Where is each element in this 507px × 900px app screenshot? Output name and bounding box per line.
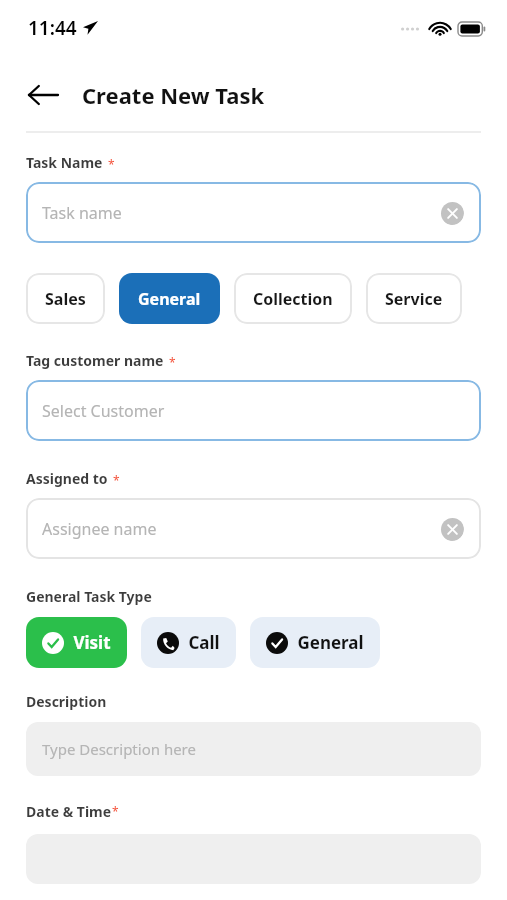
button[interactable]: Task name xyxy=(26,182,481,243)
staticText: 11:44 xyxy=(28,15,77,41)
staticText: Assigned to xyxy=(26,469,108,488)
button[interactable]: Sales xyxy=(26,273,105,324)
staticText: Sales xyxy=(45,288,86,310)
staticText: Date & Time xyxy=(26,802,112,821)
staticText: Create New Task xyxy=(82,80,265,110)
staticText: * xyxy=(113,472,120,488)
staticText: General Task Type xyxy=(26,587,152,606)
staticText: Select Customer xyxy=(42,400,165,422)
staticText: General xyxy=(138,288,201,310)
staticText: Assignee name xyxy=(42,518,157,540)
button[interactable]: General xyxy=(250,617,380,668)
staticText: Visit xyxy=(73,631,111,654)
staticText: * xyxy=(169,354,176,370)
staticText: Description xyxy=(26,692,107,711)
button[interactable]: Back xyxy=(26,78,60,112)
staticText: Task Name xyxy=(26,153,103,172)
button[interactable]: Assignee name xyxy=(26,498,481,559)
button[interactable]: Clear xyxy=(440,201,464,225)
staticText: General xyxy=(297,631,364,654)
staticText: Type Description here xyxy=(42,739,196,759)
staticText: Tag customer name xyxy=(26,351,164,370)
button[interactable]: Clear xyxy=(440,517,464,541)
staticText: * xyxy=(108,156,115,172)
staticText: Service xyxy=(385,288,443,310)
button[interactable]: Service xyxy=(366,273,462,324)
staticText: Collection xyxy=(253,288,333,310)
button[interactable]: General xyxy=(119,273,220,324)
button[interactable]: Visit xyxy=(26,617,127,668)
button[interactable]: Collection xyxy=(234,273,352,324)
button[interactable]: Call xyxy=(141,617,236,668)
button[interactable]: Select Customer xyxy=(26,380,481,441)
staticText: * xyxy=(112,803,119,819)
button[interactable]: Type Description here xyxy=(26,722,481,776)
staticText: Task name xyxy=(42,202,122,224)
staticText: Call xyxy=(188,631,220,654)
